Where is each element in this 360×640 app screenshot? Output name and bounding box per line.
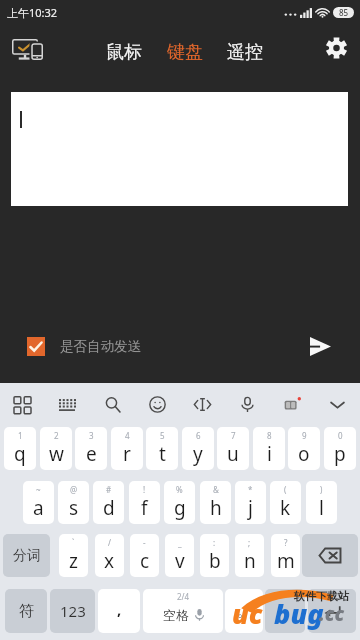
staticText: e [86,441,97,467]
staticText: q [14,441,26,467]
staticText: % [176,484,183,495]
button[interactable]: 。 [225,589,263,633]
button[interactable]: 鼠标 [97,25,151,73]
button[interactable]: ( [270,481,301,524]
button[interactable]: 3 [75,427,107,470]
staticText: 1 [18,430,23,441]
button[interactable]: Backspace [302,534,358,577]
button[interactable]: @ [58,481,89,524]
staticText: t [159,441,166,467]
button[interactable]: 2 [40,427,72,470]
button[interactable]: 123 [50,589,95,633]
staticText: 4 [125,430,130,441]
staticText: ` [72,537,75,548]
staticText: - [143,537,146,548]
button[interactable]: 分词 [3,534,50,577]
button[interactable]: 8 [253,427,285,470]
staticText: y [193,441,203,467]
button[interactable]: ) [306,481,337,524]
button[interactable]: ~ [23,481,54,524]
button[interactable]: 6 [182,427,214,470]
staticText: b [209,548,221,574]
staticText: bug [274,595,324,632]
button[interactable]: * [235,481,266,524]
staticText: s [69,495,79,521]
button[interactable]: Switch language [265,589,305,633]
staticText: 9 [302,430,307,441]
staticText: @ [70,484,78,495]
button[interactable]: Emoji [135,383,180,425]
button[interactable]: Keyboard layout [45,383,90,425]
button[interactable]: Move cursor [180,383,225,425]
button[interactable]: / [95,534,124,577]
button[interactable]: # [93,481,124,524]
button[interactable]: Enter [308,589,356,633]
staticText: ( [284,484,287,495]
button[interactable]: 5 [146,427,178,470]
staticText: 键盘 [167,41,203,64]
button[interactable]: - [130,534,159,577]
button[interactable]: 4 [111,427,143,470]
staticText: k [280,495,291,521]
staticText: v [175,548,185,574]
button[interactable]: _ [165,534,194,577]
button[interactable] [11,92,348,206]
staticText: 鼠标 [106,41,142,64]
staticText: # [106,484,112,495]
staticText: 0 [338,430,343,441]
button[interactable]: ; [235,534,264,577]
button[interactable]: Input methods [0,383,45,425]
staticText: o [298,441,310,467]
staticText: 上午10:32 [7,5,58,20]
staticText: 2/4 [177,591,190,602]
button[interactable]: 符 [5,589,47,633]
staticText: g [174,495,186,521]
staticText: 软件下载站 [294,589,349,603]
button[interactable]: & [200,481,231,524]
staticText: 8 [267,430,272,441]
button[interactable]: 是否自动发送 [17,328,151,365]
staticText: .cc [319,601,344,627]
staticText: m [277,548,295,574]
button[interactable]: 9 [288,427,320,470]
staticText: ! [143,484,146,495]
staticText: w [49,441,64,467]
staticText: n [244,548,256,574]
staticText: p [334,441,346,467]
staticText: uc [232,595,263,632]
staticText: 123 [60,601,86,621]
button[interactable]: Stickers [270,383,315,425]
button[interactable]: Hide keyboard [315,383,360,425]
staticText: ? [284,537,288,548]
staticText: 分词 [13,547,41,565]
staticText: 6 [196,430,201,441]
button[interactable]: ? [271,534,300,577]
button[interactable]: Connected device [6,29,49,69]
staticText: & [213,484,219,495]
button[interactable]: Send [298,324,342,368]
button[interactable]: Voice input [225,383,270,425]
button[interactable]: % [164,481,195,524]
button[interactable]: 2/4 [143,589,223,633]
button[interactable]: : [200,534,229,577]
staticText: ; [248,537,251,548]
staticText: z [69,548,78,574]
staticText: 2 [54,430,59,441]
staticText: : [213,537,216,548]
staticText: 。 [237,602,252,621]
button[interactable]: 0 [324,427,356,470]
button[interactable]: 键盘 [158,25,212,73]
button[interactable]: Search [90,383,135,425]
button[interactable]: 7 [217,427,249,470]
button[interactable]: Settings [316,28,356,68]
button[interactable]: , [98,589,140,633]
staticText: d [103,495,115,521]
staticText: 3 [89,430,94,441]
staticText: 遥控 [227,41,263,64]
button[interactable]: 遥控 [218,25,272,73]
button[interactable]: ` [59,534,88,577]
staticText: h [210,495,222,521]
button[interactable]: 1 [4,427,36,470]
staticText: j [248,495,253,521]
button[interactable]: ! [129,481,160,524]
